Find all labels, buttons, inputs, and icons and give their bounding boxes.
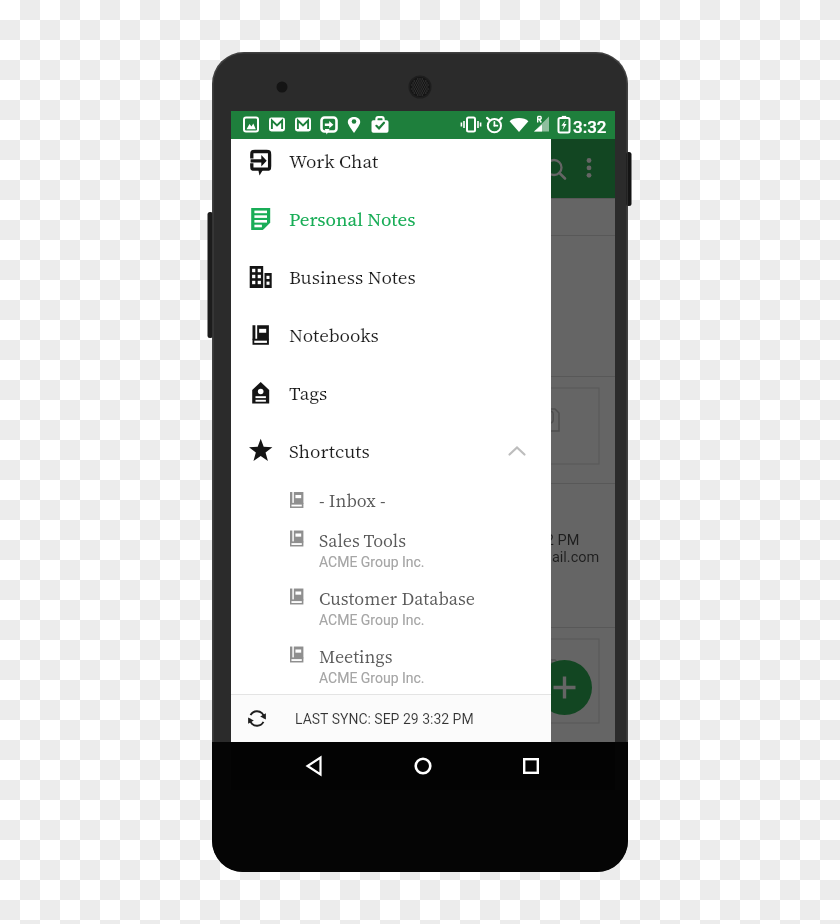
staticText: Shortcuts — [289, 438, 370, 464]
staticText: 3:32 — [573, 117, 607, 137]
staticText: Business Notes — [289, 264, 416, 290]
button[interactable]: Back — [291, 742, 339, 790]
staticText: Notebooks — [289, 322, 379, 348]
button[interactable]: Recent apps — [507, 742, 555, 790]
button[interactable]: Notebooks — [231, 306, 551, 364]
button[interactable]: Home — [399, 742, 447, 790]
staticText: Work Chat — [289, 148, 379, 174]
staticText: john.smith@gmail.com — [450, 549, 650, 566]
button[interactable]: Work Chat — [231, 132, 551, 190]
button[interactable]: Customer Database — [231, 578, 551, 636]
staticText: ACME Group Inc. — [319, 612, 425, 628]
button[interactable]: - Inbox - — [231, 480, 551, 520]
button[interactable]: Business Notes — [231, 248, 551, 306]
staticText: Sales Tools — [319, 528, 406, 553]
button[interactable]: Tags — [231, 364, 551, 422]
staticText: ACME Group Inc. — [319, 670, 425, 686]
button[interactable]: Collapse shortcuts — [495, 429, 539, 473]
staticText: Tags — [289, 380, 328, 406]
staticText: Customer Database — [319, 586, 475, 611]
staticText: ACME Group Inc. — [319, 554, 425, 570]
button[interactable]: Shortcuts — [231, 422, 551, 480]
staticText: LAST SYNC: SEP 29 3:32 PM — [295, 711, 474, 727]
button[interactable]: Personal Notes — [231, 190, 551, 248]
staticText: - Inbox - — [319, 488, 386, 513]
staticText: Sep 29 3:32 PM — [478, 532, 678, 549]
button[interactable]: LAST SYNC: SEP 29 3:32 PM — [231, 695, 551, 742]
staticText: Personal Notes — [289, 206, 416, 232]
button[interactable]: New note — [537, 660, 592, 715]
button[interactable]: Meetings — [231, 636, 551, 694]
button[interactable]: Sales Tools — [231, 520, 551, 578]
staticText: Meetings — [319, 644, 393, 669]
